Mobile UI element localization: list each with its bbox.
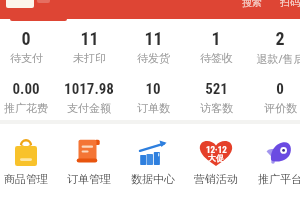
staticText: 扫码 xyxy=(280,0,300,9)
button[interactable]: 10 xyxy=(113,80,193,115)
button[interactable]: 1017.98 xyxy=(49,80,129,115)
staticText: 评价数 xyxy=(264,101,297,115)
staticText: 2 xyxy=(275,28,285,49)
staticText: 未打印 xyxy=(73,51,106,65)
staticText: 商品管理 xyxy=(4,172,48,186)
staticText: 待签收 xyxy=(200,51,233,65)
staticText: 推广花费 xyxy=(4,101,48,115)
button[interactable]: Search field xyxy=(6,0,34,8)
staticText: 待支付 xyxy=(10,51,43,65)
button[interactable]: 0.00 xyxy=(0,80,66,115)
staticText: 10 xyxy=(145,80,161,98)
button[interactable]: 数据中心 xyxy=(123,138,183,186)
button[interactable]: 0 xyxy=(240,80,300,115)
staticText: 待发货 xyxy=(137,51,170,65)
staticText: 大促 xyxy=(208,153,224,163)
staticText: 订单管理 xyxy=(67,172,111,186)
button[interactable]: 订单管理 xyxy=(59,138,119,186)
staticText: 11 xyxy=(144,28,163,49)
button[interactable]: 12·12 xyxy=(186,138,246,186)
staticText: 访客数 xyxy=(200,101,233,115)
staticText: 521 xyxy=(205,80,228,98)
button[interactable]: 扫码 xyxy=(280,0,300,9)
staticText: 订单数 xyxy=(137,101,170,115)
staticText: 营销活动 xyxy=(194,172,238,186)
button[interactable]: 11 xyxy=(49,28,129,65)
staticText: 0.00 xyxy=(12,80,40,98)
staticText: 数据中心 xyxy=(131,172,175,186)
staticText: 退款/售后 xyxy=(256,51,300,66)
staticText: 1017.98 xyxy=(64,80,114,98)
staticText: 搜索 xyxy=(242,0,262,9)
staticText: 11 xyxy=(80,28,99,49)
button[interactable]: 2 xyxy=(240,28,300,66)
staticText: 12·12 xyxy=(206,145,227,156)
button[interactable]: 推广平台 xyxy=(250,138,300,186)
staticText: 1 xyxy=(211,28,221,49)
button[interactable]: 0 xyxy=(0,28,66,65)
button[interactable]: 11 xyxy=(113,28,193,65)
button[interactable]: 搜索 xyxy=(242,0,262,9)
button[interactable]: 商品管理 xyxy=(0,138,56,186)
staticText: 0 xyxy=(21,28,31,49)
staticText: 0 xyxy=(276,80,284,98)
button[interactable]: 1 xyxy=(176,28,256,65)
staticText: 支付金额 xyxy=(67,101,111,115)
button[interactable]: 521 xyxy=(176,80,256,115)
staticText: 推广平台 xyxy=(258,172,300,186)
